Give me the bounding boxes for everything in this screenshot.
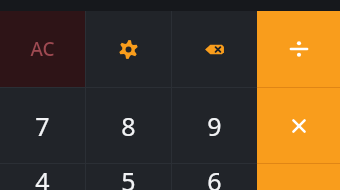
button[interactable]: Multiply [257,88,340,163]
button[interactable]: 8 [86,88,171,163]
staticText: 5 [121,164,136,190]
button[interactable]: Settings [86,11,171,87]
button[interactable]: Divide [257,11,340,87]
staticText: 4 [35,164,50,190]
button[interactable]: 5 [86,164,171,190]
button[interactable]: 9 [172,88,257,163]
button[interactable]: AC [0,11,85,87]
staticText: 7 [35,109,50,143]
button[interactable]: 7 [0,88,85,163]
staticText: 6 [207,164,222,190]
button[interactable]: 6 [172,164,257,190]
button[interactable]: Backspace [172,11,257,87]
staticText: 9 [207,109,222,143]
staticText: 8 [121,109,136,143]
button[interactable]: 4 [0,164,85,190]
staticText: AC [30,36,55,62]
